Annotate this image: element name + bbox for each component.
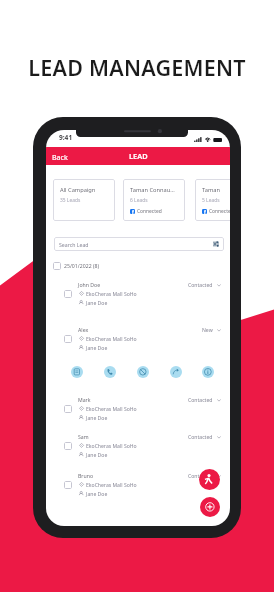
button[interactable]: Taman Connau... (123, 179, 185, 221)
staticText: Back (52, 152, 68, 162)
button[interactable]: Add (200, 497, 220, 517)
button[interactable]: Info (202, 366, 214, 378)
staticText: Jane Doe (86, 300, 108, 307)
staticText: EkoCheras Mall SoHo (86, 443, 137, 450)
staticText: EkoCheras Mall SoHo (86, 291, 137, 298)
staticText: LEAD (129, 151, 148, 161)
staticText: 9:41 (59, 133, 73, 142)
button[interactable]: Add lead (199, 469, 220, 490)
button[interactable]: All Campaign (53, 179, 115, 221)
staticText: Contacted (188, 473, 213, 480)
staticText: Connected (137, 208, 162, 215)
staticText: Mark (78, 396, 91, 403)
staticText: Taman Connau... (130, 186, 175, 194)
staticText: 25/01/2022 (8) (64, 262, 100, 269)
staticText: Taman (202, 186, 220, 194)
button[interactable]: Block (137, 366, 149, 378)
staticText: Search Lead (59, 241, 89, 248)
staticText: EkoCheras Mall SoHo (86, 406, 137, 413)
button[interactable]: Call (104, 366, 116, 378)
staticText: Contacted (188, 282, 213, 289)
button[interactable]: Sam (46, 433, 230, 463)
staticText: Alex (78, 326, 89, 333)
staticText: Jane Doe (86, 415, 108, 422)
staticText: f (132, 209, 134, 214)
staticText: EkoCheras Mall SoHo (86, 336, 137, 343)
staticText: 6 Leads (130, 197, 148, 204)
staticText: Jane Doe (86, 345, 108, 352)
staticText: f (204, 209, 206, 214)
button[interactable]: Mark (46, 396, 230, 426)
staticText: 35 Leads (60, 197, 81, 204)
button[interactable]: Alex (46, 326, 230, 356)
staticText: 5 Leads (202, 197, 220, 204)
button[interactable]: John Doe (46, 281, 230, 311)
staticText: LEAD MANAGEMENT (0, 53, 274, 592)
button[interactable]: Note (71, 366, 83, 378)
button[interactable]: Search Lead (54, 237, 224, 251)
staticText: John Doe (78, 281, 101, 288)
staticText: Jane Doe (86, 452, 108, 459)
staticText: Contacted (188, 434, 213, 441)
staticText: Connected (209, 208, 230, 215)
staticText: Contacted (188, 397, 213, 404)
button[interactable]: Back (49, 152, 65, 162)
staticText: EkoCheras Mall SoHo (86, 482, 137, 489)
staticText: New (202, 327, 213, 334)
button[interactable]: Forward (170, 366, 182, 378)
staticText: Jane Doe (86, 491, 108, 498)
staticText: Sam (78, 433, 89, 440)
button[interactable]: 25/01/2022 (8) (53, 262, 97, 270)
staticText: All Campaign (60, 186, 96, 194)
button[interactable]: Bruno (46, 472, 230, 502)
button[interactable]: Taman (195, 179, 230, 221)
staticText: Bruno (78, 472, 94, 479)
